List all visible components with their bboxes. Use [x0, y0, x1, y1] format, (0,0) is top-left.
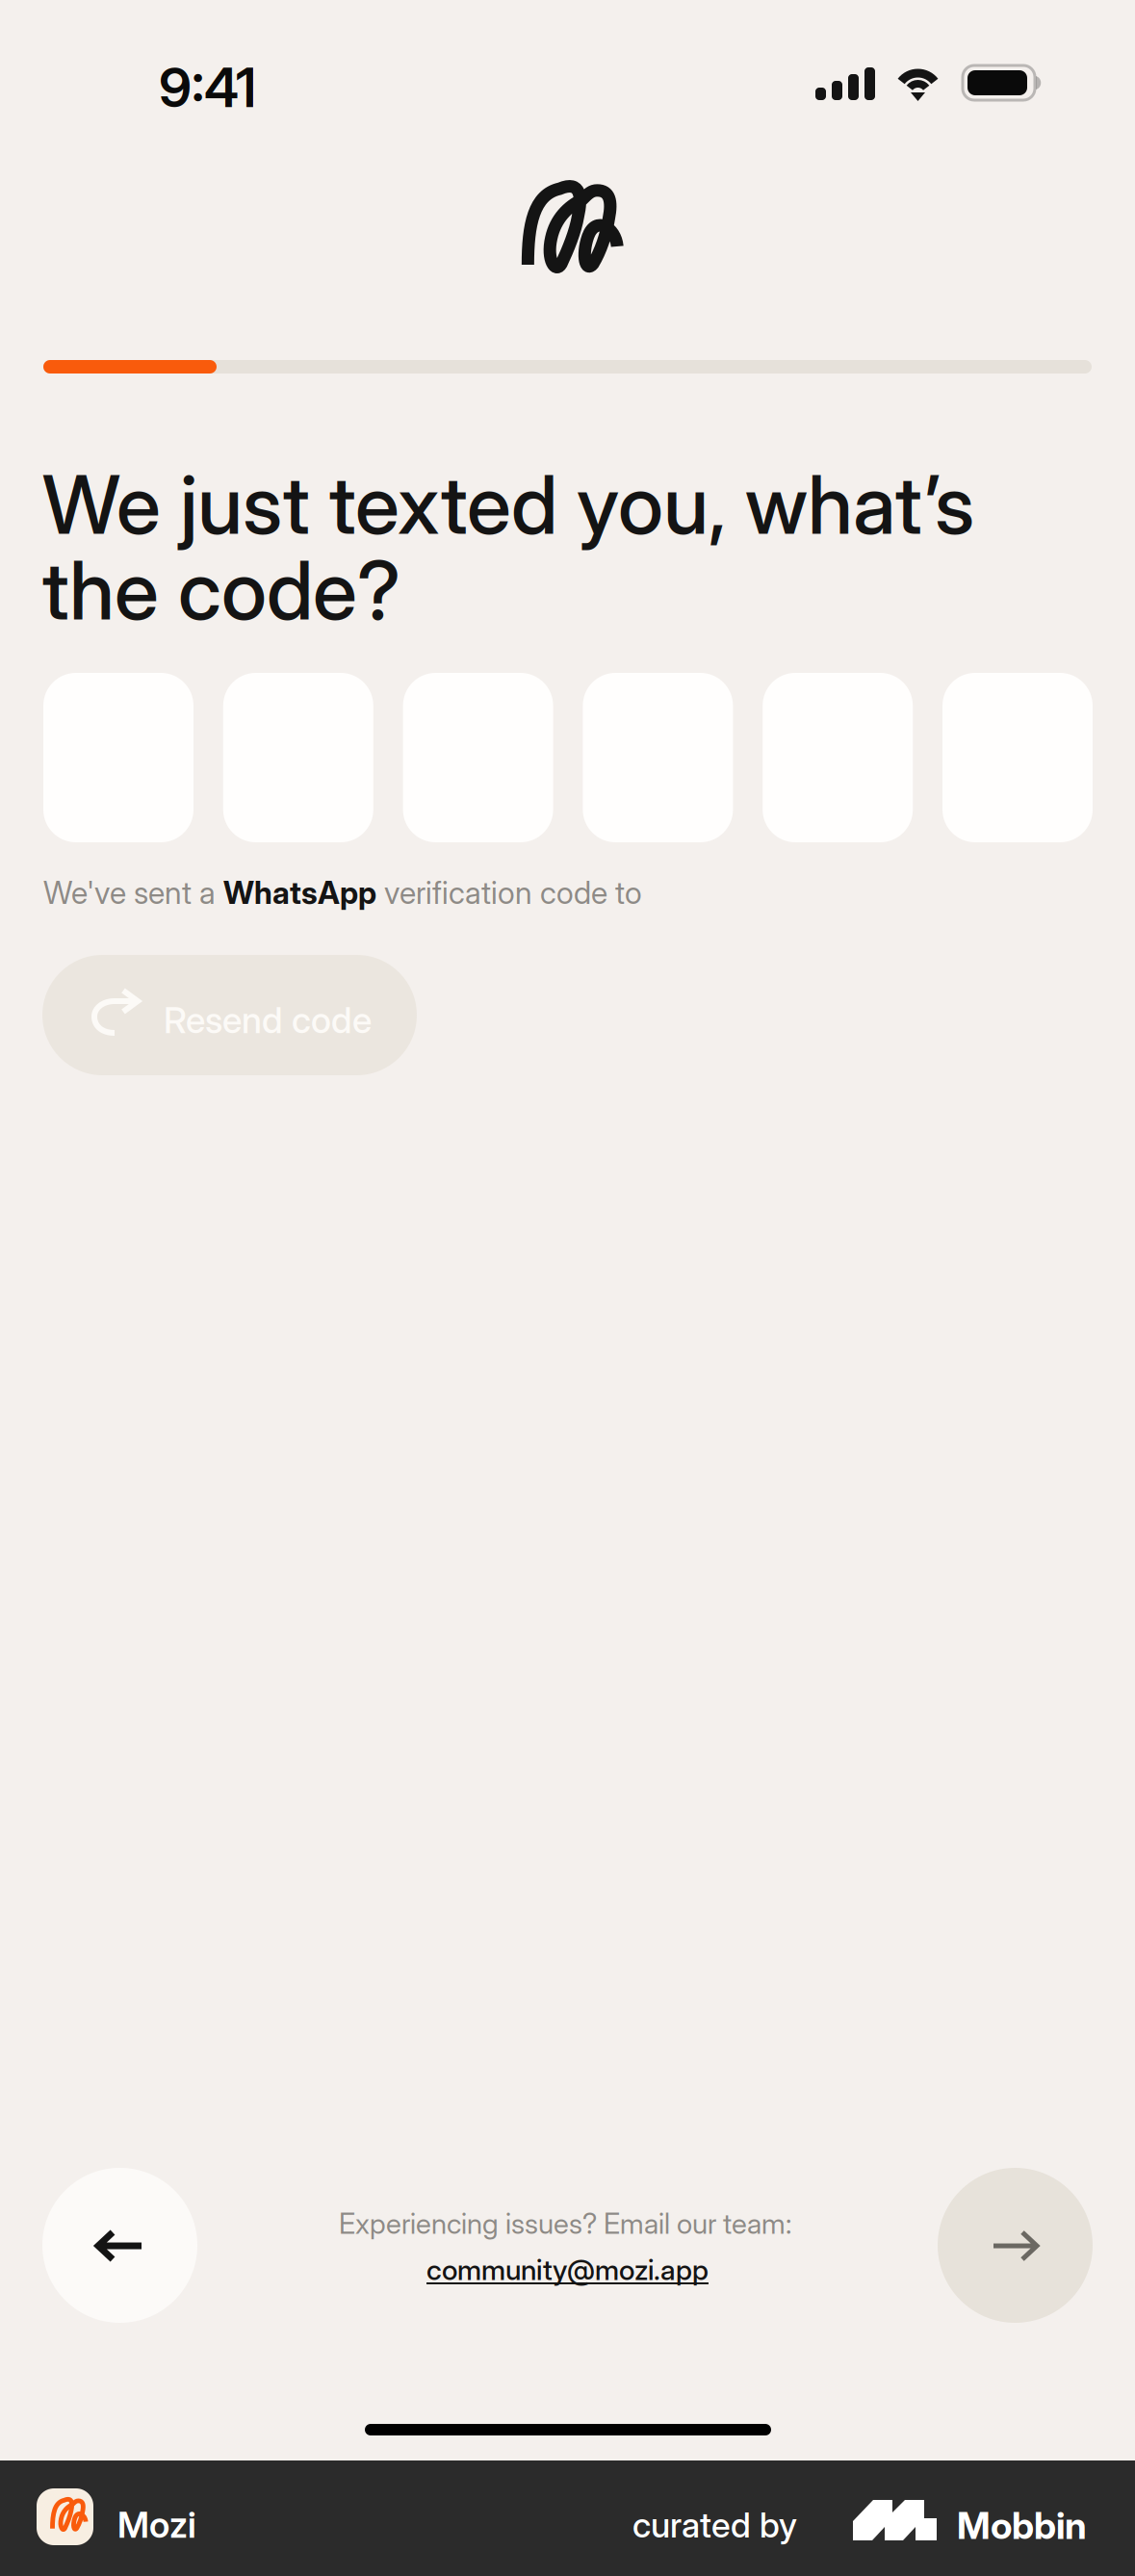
staticText: the code? [42, 541, 400, 639]
staticText: community@mozi.app [426, 2253, 709, 2287]
staticText: 9:41 [159, 55, 256, 120]
staticText: curated by [632, 2504, 797, 2546]
staticText: WhatsApp [223, 874, 376, 911]
button[interactable]: Continue [938, 2168, 1093, 2323]
button[interactable]: Back [42, 2168, 197, 2323]
staticText: Resend code [164, 998, 372, 1042]
staticText: verification code to [376, 874, 642, 911]
staticText: We just texted you, what’s [42, 455, 974, 553]
staticText: We've sent a [43, 874, 223, 911]
staticText: Mobbin [957, 2503, 1087, 2548]
staticText: Experiencing issues? Email our team: [339, 2206, 791, 2241]
button[interactable]: Verification code digit [43, 673, 193, 842]
button[interactable]: Experiencing issues? Email our team: [339, 2206, 801, 2293]
staticText: Mozi [117, 2503, 196, 2546]
button[interactable]: Resend code [42, 955, 417, 1075]
button[interactable]: Verification code digit [942, 673, 1093, 842]
